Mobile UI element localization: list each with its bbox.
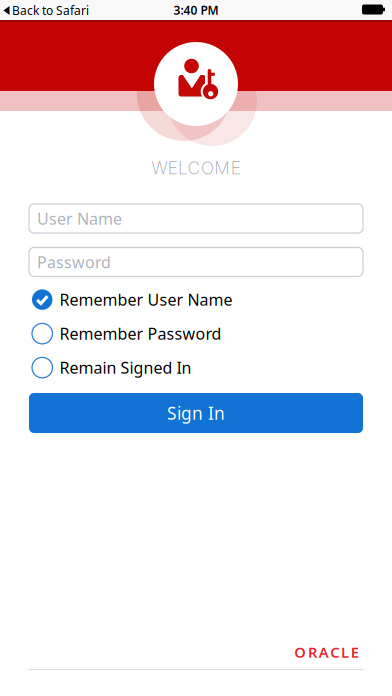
button[interactable]: Remember Password	[32, 323, 221, 344]
staticText: R	[308, 642, 317, 662]
button[interactable]: Password	[29, 247, 363, 276]
staticText: L	[341, 642, 349, 662]
button[interactable]: Remember User Name	[32, 289, 232, 310]
staticText: E	[351, 642, 359, 662]
staticText: Back to Safari	[12, 2, 89, 18]
staticText: User Name	[37, 208, 122, 229]
staticText: 3:40 PM	[173, 2, 218, 18]
staticText: Password	[37, 251, 111, 273]
staticText: C	[330, 642, 339, 662]
staticText: A	[319, 642, 329, 662]
staticText: Remember User Name	[59, 289, 232, 310]
staticText: Sign In	[167, 401, 225, 424]
staticText: WELCOME	[151, 157, 241, 178]
button[interactable]: Sign In	[29, 393, 363, 433]
button[interactable]: User Name	[29, 204, 363, 233]
staticText: Remember Password	[59, 323, 221, 344]
button[interactable]: Back to Safari	[3, 2, 89, 18]
staticText: Remain Signed In	[59, 357, 191, 378]
staticText: O	[294, 642, 306, 662]
button[interactable]: Remain Signed In	[32, 357, 191, 378]
